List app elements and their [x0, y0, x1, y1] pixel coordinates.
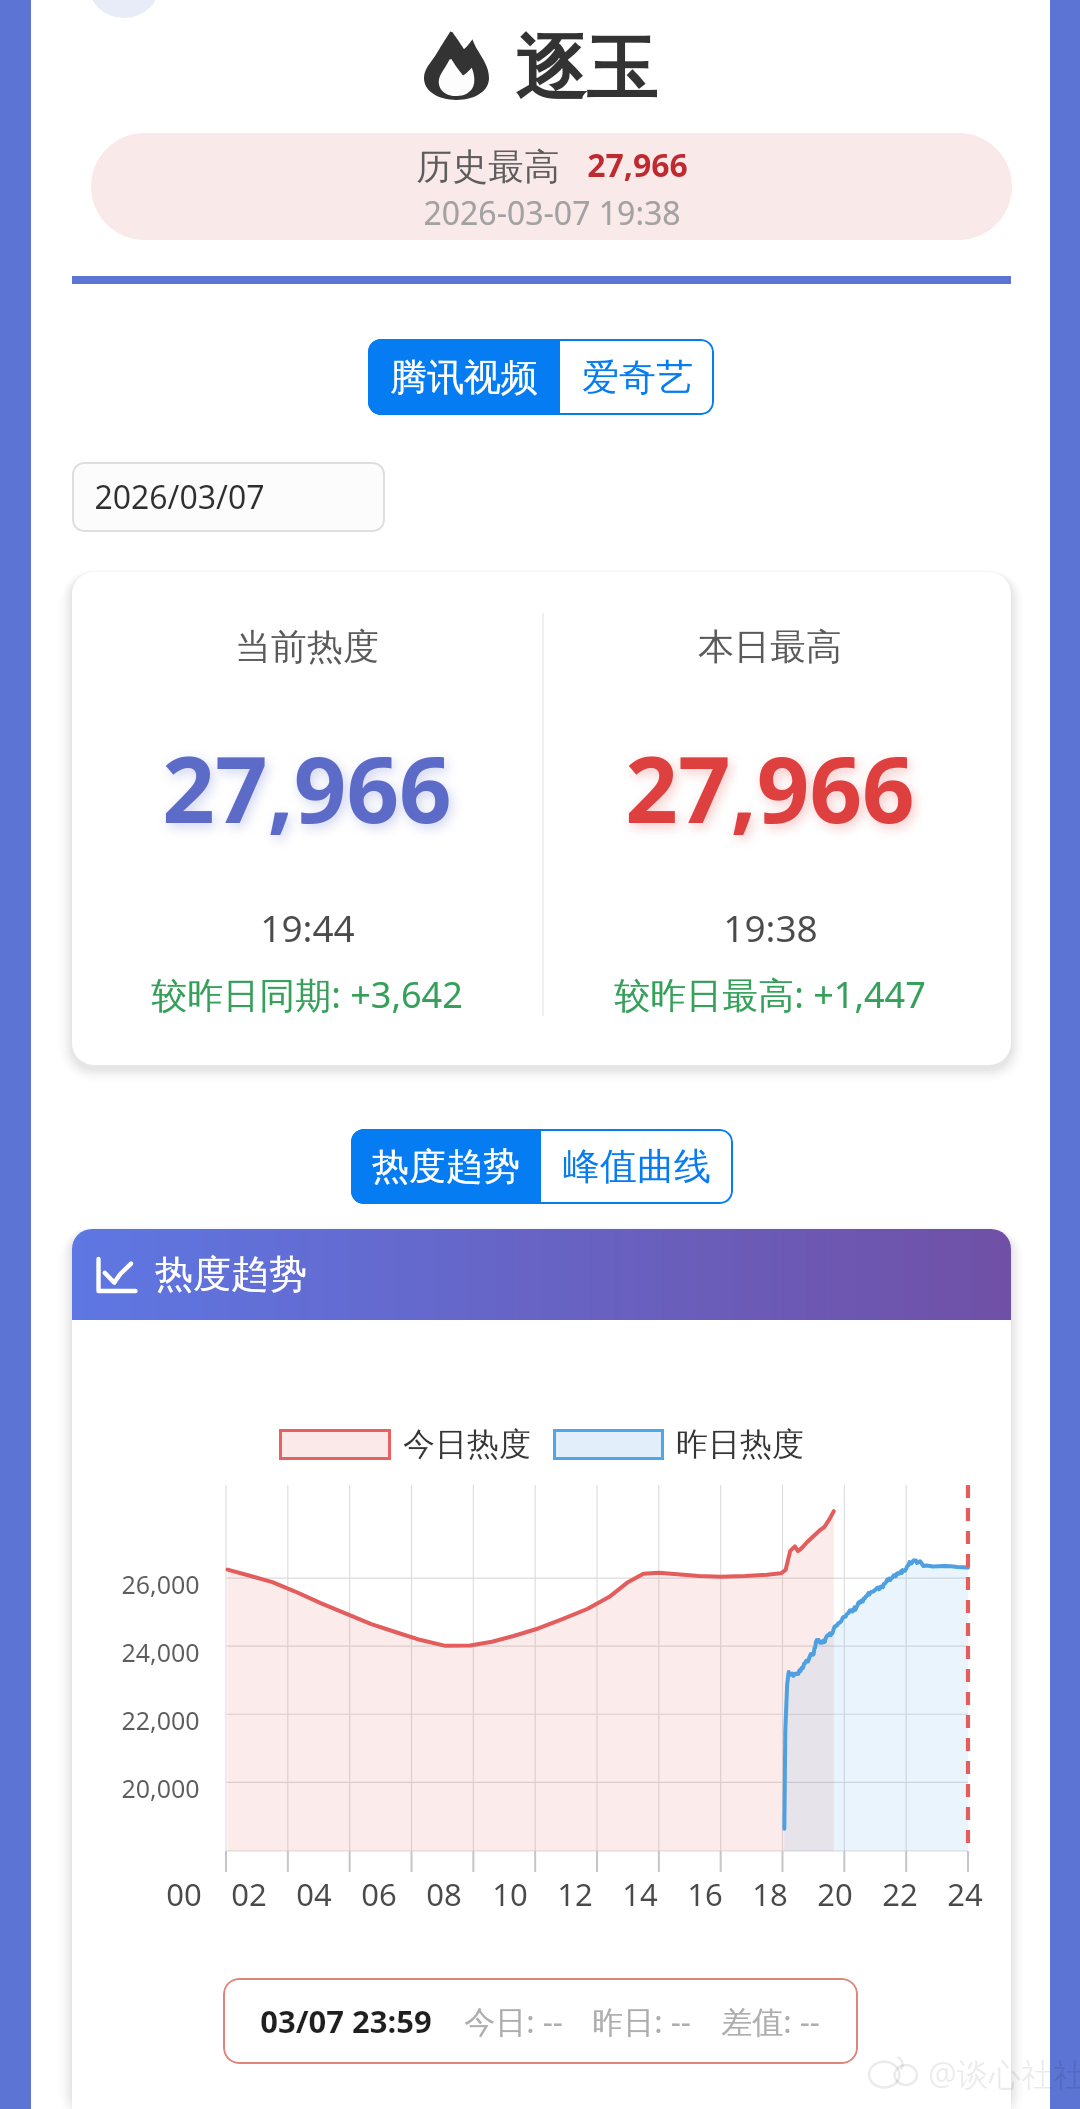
staticText: 27,966: [587, 143, 688, 187]
staticText: 22,000: [121, 1703, 200, 1737]
staticText: 2026-03-07 19:38: [423, 191, 681, 235]
staticText: 差值: --: [721, 2000, 820, 2042]
staticText: 腾讯视频: [390, 354, 538, 401]
button[interactable]: 腾讯视频: [368, 339, 560, 415]
staticText: @谈心社社长: [928, 2052, 1080, 2096]
staticText: 14: [622, 1873, 658, 1915]
staticText: 热度趋势: [372, 1143, 520, 1190]
staticText: 较昨日最高: +1,447: [614, 970, 926, 1019]
staticText: 24: [947, 1873, 983, 1915]
staticText: 24,000: [121, 1635, 200, 1669]
staticText: 当前热度: [235, 624, 379, 669]
button[interactable]: 峰值曲线: [541, 1129, 733, 1204]
staticText: 20,000: [121, 1771, 200, 1805]
staticText: 16: [687, 1873, 723, 1915]
other: 趋势图表: [95, 1256, 139, 1294]
staticText: 19:38: [723, 902, 818, 952]
button[interactable]: 热度 logo: [424, 24, 657, 100]
other: 热度 logo: [424, 29, 489, 100]
staticText: 03/07 23:59: [260, 2000, 432, 2042]
staticText: 00: [166, 1873, 202, 1915]
staticText: 10: [492, 1873, 528, 1915]
staticText: 逐玉: [515, 25, 657, 101]
staticText: 热度趋势: [155, 1250, 307, 1298]
staticText: 较昨日同期: +3,642: [151, 970, 463, 1019]
staticText: 26,000: [121, 1567, 200, 1601]
button[interactable]: 历史最高: [91, 133, 1012, 240]
staticText: 27,966: [625, 725, 915, 850]
button[interactable]: 03/07 23:59: [223, 1978, 858, 2064]
staticText: 12: [557, 1873, 593, 1915]
staticText: 昨日热度: [676, 1424, 804, 1464]
button[interactable]: 2026/03/07: [72, 462, 385, 532]
staticText: 历史最高: [416, 144, 560, 189]
staticText: 2026/03/07: [94, 475, 265, 519]
staticText: 02: [231, 1873, 267, 1915]
staticText: 今日热度: [403, 1424, 531, 1464]
button[interactable]: 爱奇艺: [560, 339, 714, 415]
staticText: 22: [882, 1873, 918, 1915]
staticText: 27,966: [162, 725, 452, 850]
staticText: 04: [296, 1873, 332, 1915]
staticText: 20: [817, 1873, 853, 1915]
staticText: 08: [426, 1873, 462, 1915]
staticText: 昨日: --: [592, 2000, 691, 2042]
staticText: 爱奇艺: [582, 354, 693, 401]
staticText: 06: [361, 1873, 397, 1915]
staticText: 19:44: [260, 902, 355, 952]
button[interactable]: 热度趋势: [351, 1129, 541, 1204]
staticText: 18: [752, 1873, 788, 1915]
staticText: 峰值曲线: [563, 1143, 711, 1190]
staticText: 今日: --: [464, 2000, 563, 2042]
staticText: 本日最高: [698, 624, 842, 669]
